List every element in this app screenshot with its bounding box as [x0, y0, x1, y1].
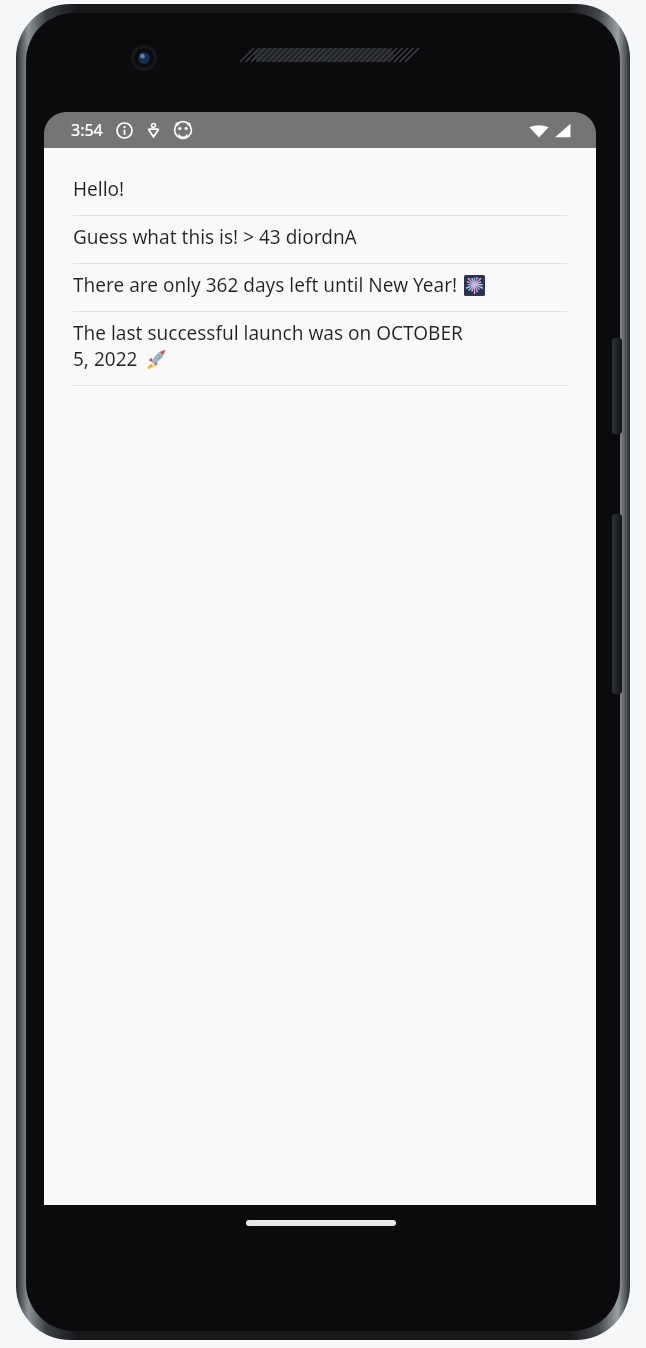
staticText: There are only 362 days left until New Y…	[73, 272, 458, 298]
button[interactable]: The last successful launch was on OCTOBE…	[44, 312, 596, 386]
other: Info	[116, 122, 133, 139]
button[interactable]: Guess what this is! > 43 diordnA	[44, 216, 596, 264]
other: Volume buttons	[612, 514, 622, 694]
other: Wi-Fi	[529, 123, 549, 138]
staticText: Hello!	[73, 176, 125, 202]
other: Power button	[612, 338, 622, 434]
other: Download	[145, 122, 162, 139]
staticText: 3:54	[71, 119, 103, 141]
button[interactable]: There are only 362 days left until New Y…	[44, 264, 596, 312]
staticText: The last successful launch was on OCTOBE…	[73, 320, 463, 346]
staticText: Guess what this is! > 43 diordnA	[73, 224, 357, 250]
staticText: 5, 2022	[73, 346, 138, 372]
other: Account	[174, 121, 192, 139]
other: Cellular signal	[554, 123, 571, 138]
button[interactable]: Hello!	[44, 168, 596, 216]
